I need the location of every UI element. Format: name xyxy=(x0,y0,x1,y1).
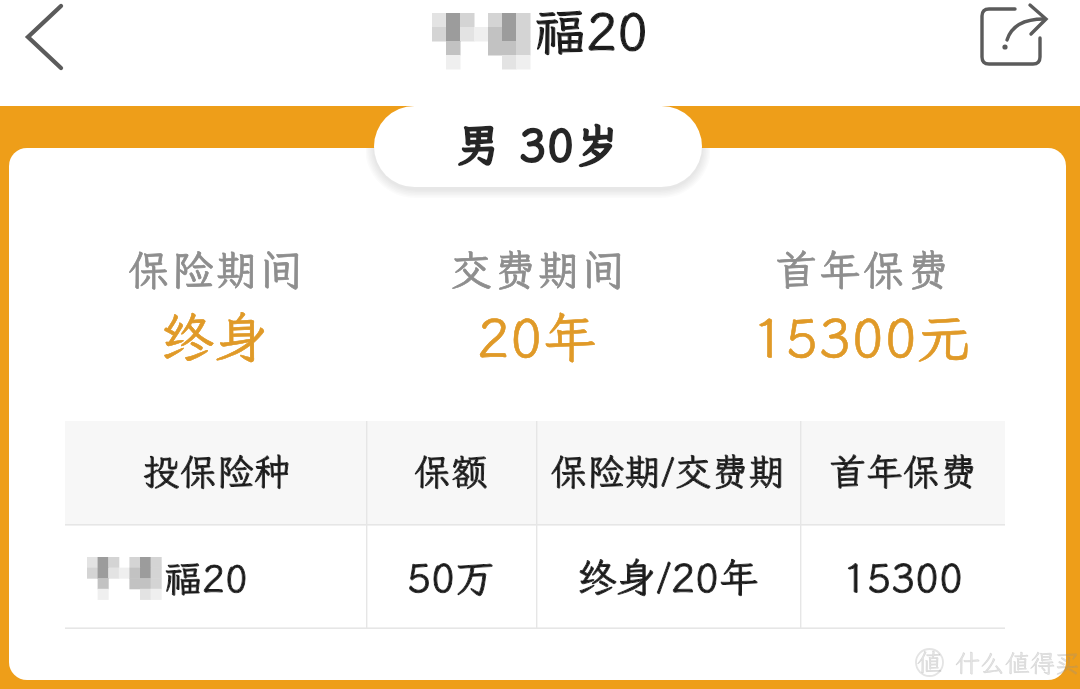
button[interactable]: Share xyxy=(970,0,1058,80)
button[interactable]: Back xyxy=(0,0,92,106)
button[interactable] xyxy=(374,106,702,187)
